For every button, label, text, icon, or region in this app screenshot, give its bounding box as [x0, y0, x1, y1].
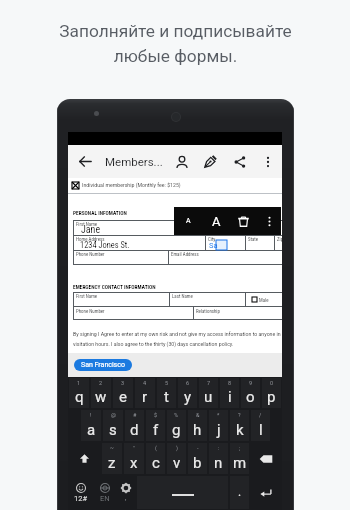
- staticText: :: [218, 445, 220, 451]
- button[interactable]: More options: [257, 145, 279, 178]
- staticText: ~: [110, 445, 114, 451]
- button[interactable]: Profile: [170, 145, 194, 178]
- staticText: *: [217, 412, 220, 418]
- staticText: ;: [239, 445, 241, 451]
- staticText: %: [174, 412, 179, 418]
- staticText: Email Address: [171, 251, 199, 257]
- staticText: h: [193, 421, 202, 439]
- button[interactable]: /: [251, 410, 270, 441]
- button[interactable]: More: [258, 210, 280, 232]
- button[interactable]: ~: [102, 443, 122, 474]
- button[interactable]: Sign: [198, 145, 222, 178]
- staticText: 2: [99, 380, 103, 386]
- staticText: 7: [207, 380, 211, 386]
- staticText: g: [172, 421, 181, 439]
- button[interactable]: .: [230, 476, 249, 509]
- button[interactable]: ": [124, 443, 144, 474]
- button[interactable]: &: [188, 410, 207, 441]
- staticText: 4: [143, 380, 147, 386]
- button[interactable]: Increase size: [203, 208, 229, 234]
- button[interactable]: Delete: [230, 208, 256, 234]
- button[interactable]: 0: [262, 378, 281, 408]
- button[interactable]: ?: [230, 410, 249, 441]
- button[interactable]: @: [103, 410, 123, 441]
- staticText: /: [259, 412, 262, 418]
- staticText: r: [142, 388, 148, 406]
- button[interactable]: 3: [113, 378, 133, 408]
- button[interactable]: Symbols: [69, 476, 93, 509]
- staticText: p: [267, 388, 276, 406]
- staticText: i: [228, 388, 232, 406]
- button[interactable]: Share: [228, 145, 252, 178]
- staticText: t: [164, 388, 169, 406]
- button[interactable]: (: [146, 443, 165, 474]
- staticText: 8: [228, 380, 232, 386]
- staticText: m: [233, 454, 247, 472]
- staticText: z: [108, 454, 116, 472]
- staticText: Phone Number: [76, 251, 105, 257]
- button[interactable]: 5: [157, 378, 176, 408]
- button[interactable]: Enter: [251, 476, 281, 509]
- staticText: $: [154, 412, 158, 418]
- button[interactable]: -: [188, 443, 207, 474]
- button[interactable]: Decrease size: [175, 208, 201, 234]
- staticText: 12#: [74, 494, 88, 503]
- staticText: o: [246, 388, 255, 406]
- button[interactable]: 6: [178, 378, 197, 408]
- staticText: ,: [125, 494, 127, 502]
- staticText: w: [95, 388, 107, 406]
- staticText: Jane: [81, 224, 101, 236]
- staticText: q: [75, 388, 84, 406]
- button[interactable]: Language: [95, 476, 114, 509]
- staticText: @: [111, 412, 116, 418]
- staticText: First Name: [76, 221, 98, 227]
- staticText: Sa: [209, 241, 218, 250]
- staticText: 5: [165, 380, 169, 386]
- staticText: f: [153, 421, 159, 439]
- button[interactable]: 7: [199, 378, 218, 408]
- button[interactable]: :: [209, 443, 228, 474]
- button[interactable]: San Francisco: [74, 359, 132, 371]
- button[interactable]: 8: [220, 378, 239, 408]
- staticText: ): [176, 445, 178, 451]
- staticText: s: [109, 421, 117, 439]
- button[interactable]: Back: [73, 145, 97, 178]
- button[interactable]: Backspace: [251, 443, 281, 474]
- staticText: &: [196, 412, 200, 418]
- button[interactable]: 2: [91, 378, 111, 408]
- staticText: x: [130, 454, 138, 472]
- button[interactable]: Shift: [69, 443, 100, 474]
- staticText: .: [238, 485, 242, 499]
- staticText: Individual membership (Monthly fee: $125…: [82, 182, 181, 188]
- staticText: San Francisco: [81, 361, 125, 369]
- staticText: Last Name: [172, 293, 193, 299]
- button[interactable]: #: [125, 410, 144, 441]
- button[interactable]: ;: [230, 443, 249, 474]
- button[interactable]: 1: [69, 378, 89, 408]
- staticText: Zip: [277, 236, 282, 242]
- staticText: A: [212, 214, 221, 229]
- staticText: ?: [238, 412, 241, 418]
- button[interactable]: ): [167, 443, 186, 474]
- staticText: Phone Number: [76, 308, 105, 314]
- button[interactable]: %: [167, 410, 186, 441]
- staticText: -: [197, 445, 199, 451]
- button[interactable]: Space: [137, 476, 228, 509]
- staticText: a: [87, 421, 96, 439]
- button[interactable]: 4: [135, 378, 155, 408]
- staticText: 1234 Jones St.: [80, 240, 130, 250]
- staticText: Заполняйте и подписывайте любые формы.: [59, 21, 292, 66]
- button[interactable]: 9: [241, 378, 260, 408]
- staticText: 1: [77, 380, 81, 386]
- staticText: City: [208, 236, 216, 242]
- staticText: By signing I Agree to enter at my own ri…: [73, 331, 282, 337]
- button[interactable]: $: [146, 410, 165, 441]
- staticText: Home Address: [76, 236, 105, 242]
- staticText: Relationship: [196, 308, 220, 314]
- button[interactable]: !: [81, 410, 101, 441]
- staticText: n: [214, 454, 223, 472]
- button[interactable]: Members...: [105, 145, 163, 178]
- button[interactable]: *: [209, 410, 228, 441]
- button[interactable]: Settings: [116, 476, 135, 509]
- staticText: EN: [100, 494, 110, 503]
